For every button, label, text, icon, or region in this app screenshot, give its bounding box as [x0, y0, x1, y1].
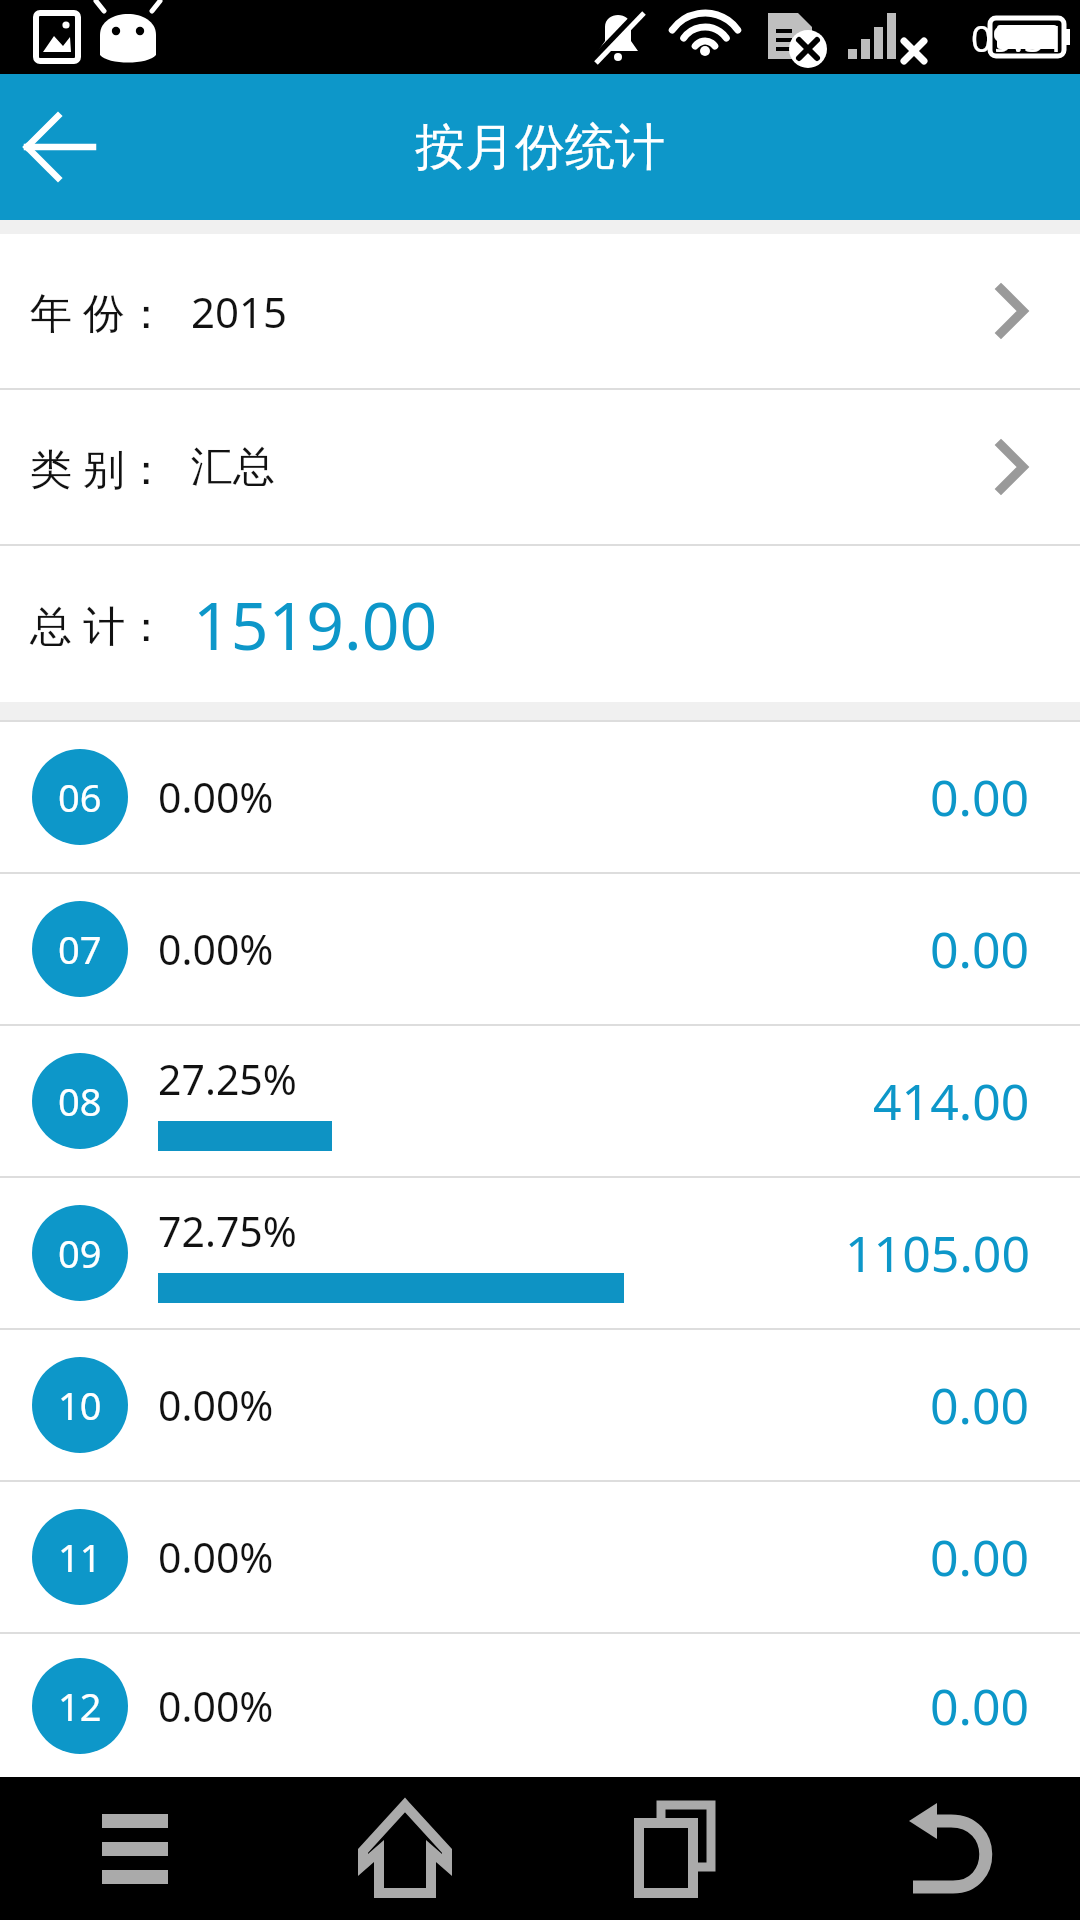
staticText: 0.00 [930, 915, 1030, 983]
staticText: 0.00 [930, 1371, 1030, 1439]
staticText: 07 [58, 923, 102, 975]
button[interactable]: Home [270, 1777, 540, 1920]
staticText: 0.00% [158, 1377, 274, 1433]
staticText: 0.00% [158, 1678, 274, 1734]
staticText: 11 [58, 1531, 102, 1583]
button[interactable]: Back [810, 1777, 1080, 1920]
staticText: 0.00% [158, 921, 274, 977]
staticText: 1519.00 [193, 579, 438, 669]
staticText: 0.00 [930, 1523, 1030, 1591]
staticText: 总 计： [30, 596, 167, 653]
staticText: 12 [58, 1680, 102, 1732]
staticText: 0.00% [158, 769, 274, 825]
staticText: 0.00 [930, 763, 1030, 831]
staticText: 按月份统计 [415, 116, 665, 179]
button[interactable]: 09 [0, 1178, 1080, 1328]
button[interactable]: 年 份： [0, 234, 1080, 388]
button[interactable]: 12 [0, 1634, 1080, 1777]
staticText: 2015 [191, 283, 288, 340]
staticText: 414.00 [873, 1067, 1030, 1135]
staticText: 09:51 [971, 12, 1066, 62]
staticText: 0.00 [930, 1672, 1030, 1740]
button[interactable]: Menu [0, 1777, 270, 1920]
button[interactable]: Back [0, 87, 120, 207]
staticText: 08 [58, 1075, 102, 1127]
staticText: 10 [58, 1379, 102, 1431]
staticText: 0.00% [158, 1529, 274, 1585]
staticText: 09 [58, 1227, 102, 1279]
staticText: 年 份： [30, 283, 167, 340]
button[interactable]: 类 别： [0, 390, 1080, 544]
staticText: 06 [58, 771, 102, 823]
staticText: 27.25% [158, 1051, 297, 1107]
button[interactable]: 06 [0, 722, 1080, 872]
button[interactable]: 08 [0, 1026, 1080, 1176]
staticText: 类 别： [30, 439, 167, 496]
button[interactable]: Recents [540, 1777, 810, 1920]
staticText: 1105.00 [845, 1219, 1030, 1287]
staticText: 72.75% [158, 1203, 297, 1259]
staticText: 汇总 [191, 441, 275, 494]
button[interactable]: 10 [0, 1330, 1080, 1480]
button[interactable]: 11 [0, 1482, 1080, 1632]
button[interactable]: 07 [0, 874, 1080, 1024]
